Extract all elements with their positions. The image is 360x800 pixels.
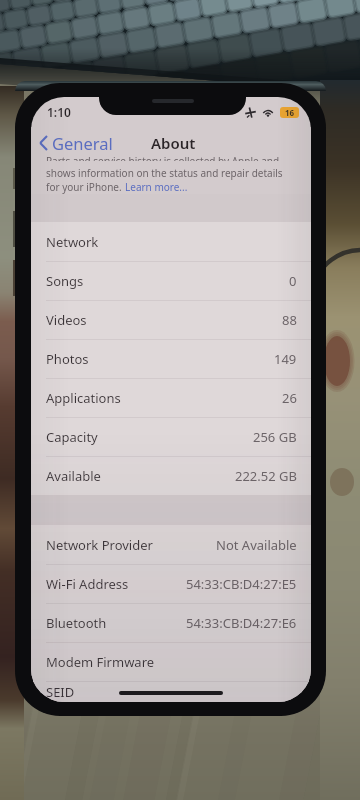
- button[interactable]: Applications: [31, 378, 311, 417]
- button[interactable]: Capacity: [31, 417, 311, 456]
- staticText: 0: [289, 272, 297, 290]
- staticText: Photos: [46, 350, 89, 368]
- staticText: Bluetooth: [46, 614, 107, 632]
- staticText: Wi-Fi Address: [46, 575, 129, 593]
- staticText: 149: [274, 350, 297, 368]
- staticText: Songs: [46, 272, 84, 290]
- staticText: 256 GB: [253, 428, 297, 446]
- staticText: Applications: [46, 389, 121, 407]
- staticText: SEID: [46, 683, 75, 701]
- button[interactable]: Available: [31, 456, 311, 495]
- staticText: Modem Firmware: [46, 653, 155, 671]
- staticText: Videos: [46, 311, 87, 329]
- button[interactable]: Videos: [31, 300, 311, 339]
- staticText: 16: [285, 107, 295, 118]
- button[interactable]: Photos: [31, 339, 311, 378]
- staticText: Network Provider: [46, 536, 153, 554]
- staticText: 88: [282, 311, 297, 329]
- staticText: Available: [46, 467, 101, 485]
- button[interactable]: SEID: [31, 681, 311, 702]
- staticText: Capacity: [46, 428, 98, 446]
- staticText: for your iPhone.: [46, 180, 125, 194]
- staticText: 54:33:CB:D4:27:E6: [186, 614, 297, 632]
- staticText: General: [52, 132, 113, 154]
- button[interactable]: Wi-Fi Address: [31, 564, 311, 603]
- staticText: About: [151, 133, 196, 153]
- staticText: Parts and service history is collected b…: [46, 154, 280, 161]
- button[interactable]: Songs: [31, 261, 311, 300]
- staticText: Network: [46, 233, 99, 251]
- button[interactable]: Network Provider: [31, 525, 311, 564]
- staticText: 54:33:CB:D4:27:E5: [186, 575, 297, 593]
- staticText: Not Available: [216, 536, 297, 554]
- button[interactable]: Learn more...: [125, 180, 188, 194]
- button[interactable]: Modem Firmware: [31, 642, 311, 681]
- staticText: 26: [282, 389, 297, 407]
- staticText: 222.52 GB: [235, 467, 297, 485]
- button[interactable]: Bluetooth: [31, 603, 311, 642]
- button[interactable]: Network: [31, 222, 311, 261]
- button[interactable]: General: [38, 132, 113, 154]
- staticText: shows information on the status and repa…: [46, 166, 283, 180]
- staticText: 1:10: [47, 104, 71, 120]
